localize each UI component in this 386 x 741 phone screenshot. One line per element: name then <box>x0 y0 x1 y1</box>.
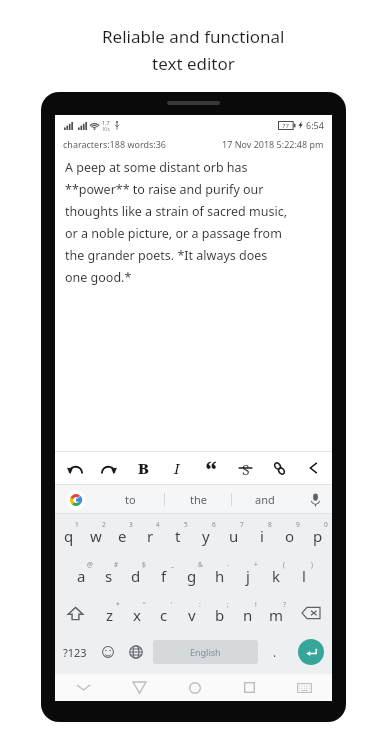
button[interactable]: e <box>109 514 136 554</box>
button[interactable]: A peep at some distant orb has <box>55 153 332 451</box>
button[interactable]: Code <box>296 452 330 484</box>
button[interactable]: Google search <box>55 485 97 514</box>
button[interactable]: t <box>164 514 192 554</box>
button[interactable]: x <box>123 594 150 632</box>
button[interactable]: Backspace <box>290 594 332 632</box>
staticText: ) <box>311 560 313 569</box>
staticText: A peep at some distant orb has <box>65 159 248 176</box>
staticText: 77 <box>282 122 289 130</box>
button[interactable]: Hide keyboard <box>55 674 111 701</box>
staticText: m <box>269 605 284 625</box>
button[interactable]: Voice input <box>298 485 332 514</box>
staticText: c <box>160 605 168 625</box>
staticText: “ <box>205 452 218 484</box>
staticText: _ <box>171 560 174 569</box>
button[interactable]: s <box>95 554 122 594</box>
staticText: ! <box>255 600 257 609</box>
staticText: to <box>125 492 136 507</box>
button[interactable]: d <box>122 554 150 594</box>
staticText: 0 <box>324 520 328 529</box>
staticText: the <box>190 492 207 507</box>
button[interactable]: g <box>178 554 206 594</box>
staticText: 8 <box>268 520 272 529</box>
staticText: @ <box>87 560 93 569</box>
staticText: 1 <box>75 520 79 529</box>
button[interactable]: Redo <box>92 452 126 484</box>
staticText: " <box>143 600 146 609</box>
button[interactable]: Bold <box>126 452 160 484</box>
staticText: y <box>202 526 210 546</box>
staticText: 7 <box>240 520 244 529</box>
button[interactable]: Back <box>111 674 167 701</box>
button[interactable]: j <box>234 554 262 594</box>
staticText: the grander poets. *It always does <box>65 247 268 264</box>
button[interactable]: English <box>153 640 258 664</box>
staticText: i <box>260 526 264 546</box>
staticText: + <box>254 560 258 569</box>
button[interactable]: the <box>165 485 231 514</box>
staticText: u <box>229 526 239 546</box>
button[interactable]: Enter <box>289 632 332 672</box>
button[interactable]: n <box>234 594 262 632</box>
staticText: h <box>215 566 225 586</box>
button[interactable]: to <box>97 485 164 514</box>
button[interactable]: m <box>262 594 290 632</box>
staticText: 4 <box>156 520 160 529</box>
button[interactable]: b <box>206 594 234 632</box>
staticText: x <box>133 605 141 625</box>
button[interactable]: z <box>96 594 123 632</box>
button[interactable]: and <box>232 485 298 514</box>
button[interactable]: a <box>68 554 95 594</box>
staticText: I <box>174 458 180 478</box>
button[interactable]: . <box>261 632 289 672</box>
staticText: or a noble picture, or a passage from <box>65 225 282 242</box>
staticText: 3 <box>129 520 133 529</box>
button[interactable]: Switch keyboard <box>277 674 332 701</box>
button[interactable]: Shift <box>55 594 96 632</box>
staticText: English <box>190 646 221 658</box>
button[interactable]: u <box>220 514 248 554</box>
button[interactable]: k <box>262 554 290 594</box>
button[interactable]: Undo <box>58 452 92 484</box>
button[interactable]: f <box>150 554 178 594</box>
staticText: 17 Nov 2018 5:22:48 pm <box>222 138 324 150</box>
button[interactable]: y <box>192 514 220 554</box>
staticText: v <box>188 605 196 625</box>
button[interactable]: Recent apps <box>222 674 277 701</box>
staticText: one good.* <box>65 269 132 286</box>
button[interactable]: h <box>206 554 234 594</box>
button[interactable]: Quote <box>194 452 228 484</box>
staticText: q <box>64 526 74 546</box>
staticText: # <box>114 560 119 569</box>
button[interactable]: q <box>55 514 82 554</box>
button[interactable]: r <box>136 514 164 554</box>
button[interactable]: Italic <box>160 452 194 484</box>
staticText: S <box>242 460 250 476</box>
button[interactable]: i <box>248 514 276 554</box>
button[interactable]: l <box>290 554 318 594</box>
staticText: 5 <box>184 520 188 529</box>
button[interactable]: Change language <box>122 632 150 672</box>
staticText: . <box>273 644 277 660</box>
button[interactable]: p <box>304 514 332 554</box>
button[interactable]: w <box>82 514 109 554</box>
staticText: f <box>161 566 167 586</box>
staticText: j <box>246 566 250 586</box>
button[interactable]: Insert link <box>262 452 296 484</box>
button[interactable]: c <box>150 594 178 632</box>
staticText: n <box>243 605 253 625</box>
staticText: d <box>131 566 141 586</box>
staticText: $ <box>142 560 146 569</box>
button[interactable]: Strikethrough <box>228 452 262 484</box>
staticText: ? <box>283 600 286 609</box>
button[interactable]: v <box>178 594 206 632</box>
staticText: a <box>77 566 86 586</box>
staticText: w <box>90 526 102 546</box>
staticText: p <box>313 526 323 546</box>
button[interactable]: ?123 <box>55 632 94 672</box>
button[interactable]: o <box>276 514 304 554</box>
button[interactable]: Emoji <box>94 632 122 672</box>
staticText: K/s <box>103 126 110 132</box>
staticText: 6:54 <box>306 119 324 131</box>
button[interactable]: Home <box>167 674 222 701</box>
